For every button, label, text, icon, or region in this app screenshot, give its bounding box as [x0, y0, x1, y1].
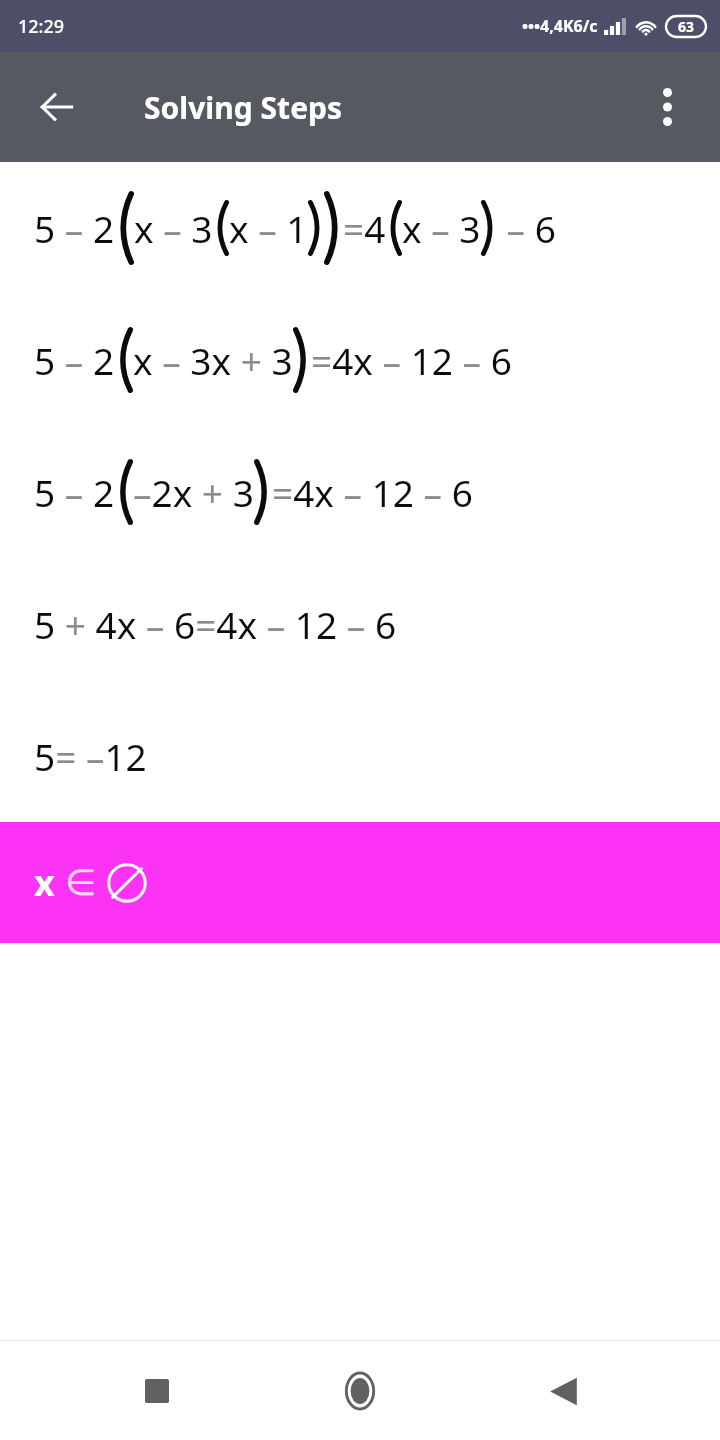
staticText: 12:29 [18, 14, 65, 39]
staticText: x – 1 [229, 203, 308, 253]
staticText: ∈ [65, 862, 97, 904]
button[interactable]: x [0, 822, 720, 943]
staticText: –2x + 3 [133, 467, 254, 517]
staticText: 63 [678, 17, 695, 36]
staticText: •••4,4K6/c [522, 15, 598, 37]
staticText: Solving Steps [144, 87, 343, 128]
button[interactable]: Back [517, 1345, 609, 1437]
button[interactable]: 5= –12 [0, 690, 720, 822]
staticText: x – 3x + 3 [133, 335, 293, 385]
button[interactable]: More options [634, 74, 700, 140]
staticText: 5 + 4x – 6=4x – 12 – 6 [34, 599, 397, 649]
button[interactable]: 5 – 2 [0, 426, 720, 558]
staticText: 5= –12 [34, 731, 147, 781]
staticText: =4x – 12 – 6 [311, 335, 512, 385]
staticText: x [34, 858, 55, 907]
staticText: 5 – 2 [34, 467, 115, 517]
staticText: =4 [343, 203, 386, 253]
staticText: =4x – 12 – 6 [272, 467, 473, 517]
staticText: 5 – 2 [34, 335, 115, 385]
button[interactable]: Navigate up [20, 70, 94, 144]
button[interactable]: Home [314, 1345, 406, 1437]
button[interactable]: 5 – 2 [0, 294, 720, 426]
button[interactable]: 5 + 4x – 6=4x – 12 – 6 [0, 558, 720, 690]
staticText: – 6 [497, 203, 556, 253]
staticText: x – 3 [134, 203, 213, 253]
button[interactable]: 5 – 2 [0, 162, 720, 294]
staticText: 5 – 2 [34, 203, 115, 253]
button[interactable]: Recent apps [111, 1345, 203, 1437]
staticText: x – 3 [402, 203, 481, 253]
